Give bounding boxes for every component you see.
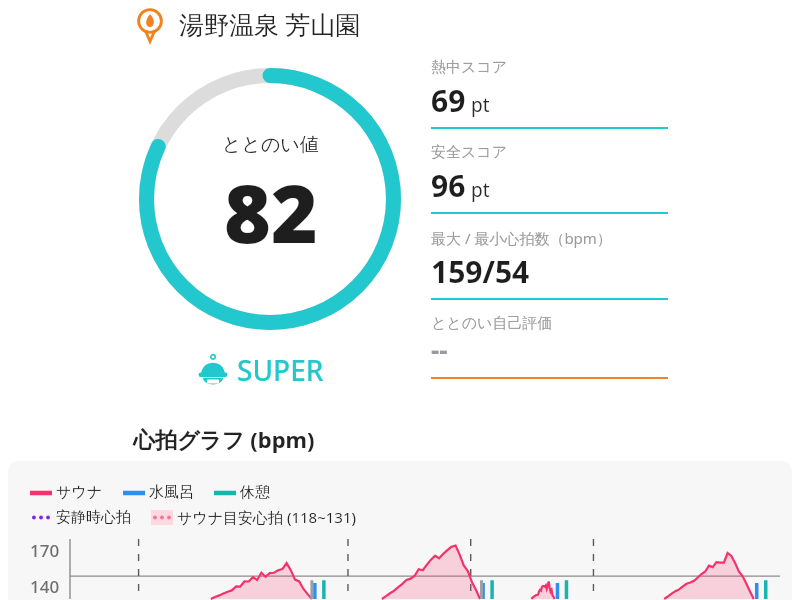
staticText: 湯野温泉 芳山園: [179, 7, 361, 41]
staticText: 159/54: [431, 251, 530, 292]
staticText: 安静時心拍: [56, 508, 131, 527]
staticText: ととのい値: [222, 133, 319, 157]
staticText: 安全スコア: [431, 143, 508, 162]
button[interactable]: 安全スコア: [431, 143, 668, 228]
staticText: 水風呂: [149, 483, 194, 502]
staticText: 170: [30, 539, 60, 562]
button[interactable]: 熱中スコア: [431, 58, 668, 143]
staticText: 140: [30, 575, 60, 598]
staticText: 熱中スコア: [431, 58, 508, 77]
staticText: pt: [471, 177, 490, 203]
staticText: 休憩: [240, 483, 270, 502]
staticText: 最大 / 最小心拍数（bpm）: [431, 228, 612, 248]
other: SUPER rank: [197, 354, 229, 386]
staticText: SUPER: [237, 351, 324, 389]
staticText: 96: [431, 165, 466, 206]
other: Sauna location: [131, 5, 169, 43]
button[interactable]: サウナ: [8, 461, 792, 600]
button[interactable]: ととのい値: [139, 68, 401, 330]
button[interactable]: Sauna location: [131, 2, 361, 46]
staticText: 69: [431, 80, 466, 121]
staticText: --: [431, 332, 448, 367]
staticText: ととのい自己評価: [431, 314, 553, 333]
staticText: pt: [471, 92, 490, 118]
button[interactable]: 最大 / 最小心拍数（bpm）: [431, 228, 668, 314]
staticText: 心拍グラフ (bpm): [133, 424, 315, 454]
button[interactable]: SUPER rank: [197, 348, 324, 392]
button[interactable]: ととのい自己評価: [431, 314, 668, 393]
staticText: サウナ目安心拍 (118~131): [177, 507, 357, 527]
staticText: サウナ: [56, 483, 103, 502]
staticText: 82: [224, 157, 318, 266]
